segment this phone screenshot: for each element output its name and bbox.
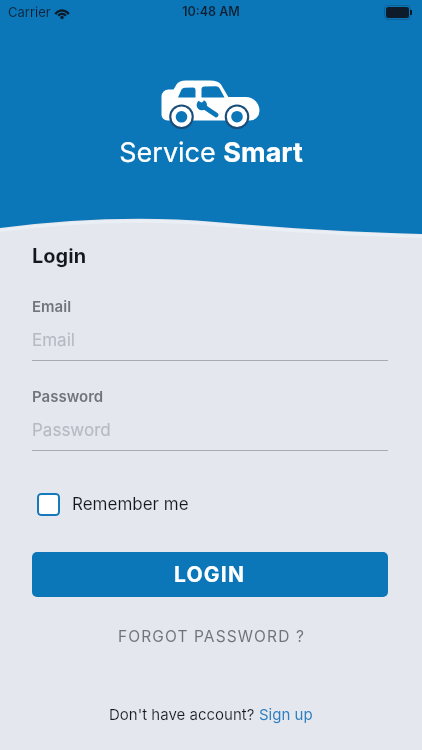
button[interactable]: Sign up xyxy=(259,705,313,723)
button[interactable]: Remember me xyxy=(37,493,189,516)
staticText: Don't have account? xyxy=(109,705,259,723)
staticText: Remember me xyxy=(72,494,189,515)
button[interactable]: FORGOT PASSWORD ? xyxy=(118,627,305,646)
staticText: Carrier xyxy=(8,4,51,20)
staticText: LOGIN xyxy=(174,562,246,587)
staticText: Password xyxy=(32,420,111,441)
button[interactable]: LOGIN xyxy=(32,552,388,597)
staticText: Login xyxy=(32,244,87,268)
staticText: 10:48 AM xyxy=(0,4,422,19)
button[interactable]: Password xyxy=(32,411,388,449)
staticText: Password xyxy=(32,387,104,405)
staticText: Service Smart xyxy=(0,136,422,169)
staticText: Email xyxy=(32,297,72,315)
button[interactable]: Email xyxy=(32,321,388,359)
staticText: Email xyxy=(32,330,75,351)
